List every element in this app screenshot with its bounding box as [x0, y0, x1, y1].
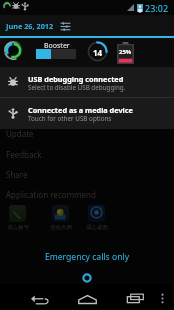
button[interactable]: 优化大师	[44, 205, 77, 231]
button[interactable]: Update	[6, 128, 34, 139]
button[interactable]: Feedback	[6, 149, 42, 160]
staticText: 成心桌面	[86, 224, 108, 231]
button[interactable]: Connected as a media device	[0, 98, 174, 128]
button[interactable]: Application recommend	[6, 189, 96, 200]
button[interactable]: Recent apps	[118, 285, 152, 310]
button[interactable]: 25%	[117, 42, 134, 64]
button[interactable]	[36, 49, 76, 59]
staticText: Booster	[44, 41, 70, 51]
button[interactable]: 成心桌面	[80, 205, 113, 231]
staticText: 成心拨号	[7, 224, 29, 231]
button[interactable]: Back	[22, 286, 56, 310]
button[interactable]: Menu	[153, 285, 172, 310]
staticText: 23:02	[145, 2, 169, 14]
button[interactable]: Quick settings	[59, 20, 71, 32]
staticText: Connected as a media device	[28, 105, 133, 115]
staticText: June 26, 2012	[6, 21, 54, 31]
staticText: 25%	[119, 48, 132, 56]
staticText: Emergency calls only	[0, 251, 174, 263]
button[interactable]: 成心拨号	[1, 205, 34, 231]
staticText: Select to disable USB debugging.	[28, 83, 126, 92]
staticText: Touch for other USB options	[28, 114, 112, 123]
button[interactable]: Share	[6, 169, 28, 180]
staticText: USB debugging connected	[28, 74, 124, 84]
button[interactable]: Home	[70, 286, 104, 310]
button[interactable]: 14	[87, 41, 108, 62]
button[interactable]: USB debugging connected	[0, 67, 174, 97]
staticText: 14	[93, 47, 103, 58]
staticText: 优化大师	[50, 224, 72, 231]
